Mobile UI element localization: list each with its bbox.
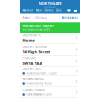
- staticText: Men: [36, 9, 42, 12]
- button[interactable]: Sale: [56, 9, 62, 12]
- staticText: Home: [22, 37, 34, 43]
- staticText: Women: [22, 9, 33, 12]
- staticText: Basket › Delivery: [22, 16, 46, 20]
- staticText: FREE NEXT-DAY DELIVERY: [22, 24, 54, 27]
- button[interactable]: POSTCODE: [20, 56, 80, 67]
- staticText: on orders over £40: [22, 28, 50, 31]
- staticText: Edit basket: [62, 16, 78, 20]
- button[interactable]: DELIVERY SLOT: [20, 67, 80, 76]
- staticText: POSTCODE: [22, 56, 35, 60]
- staticText: NORTHGATE: [38, 1, 61, 6]
- button[interactable]: Saved items: [67, 9, 71, 12]
- button[interactable]: Home: [44, 9, 53, 12]
- staticText: SW1A 1AA: [22, 60, 42, 66]
- button[interactable]: Basket: [73, 9, 78, 12]
- button[interactable]: Edit basket: [62, 16, 78, 20]
- button[interactable]: DELIVERING TO: [20, 33, 80, 43]
- staticText: DELIVERY ADDRESS: [22, 45, 46, 48]
- staticText: DELIVERY SLOT: [22, 67, 40, 71]
- staticText: name@example.com: [26, 93, 51, 96]
- staticText: CONTACT DETAILS: [22, 88, 44, 92]
- staticText: DELIVERING TO: [22, 33, 41, 37]
- staticText: Home: [44, 9, 53, 12]
- button[interactable]: Women: [22, 9, 33, 12]
- button[interactable]: PAYMENT METHOD: [20, 76, 80, 87]
- button[interactable]: DELIVERY ADDRESS: [20, 43, 80, 56]
- staticText: Visa ending 4242: [26, 82, 52, 85]
- button[interactable]: Men: [36, 9, 42, 12]
- staticText: Tomorrow 9am – 12pm: [26, 72, 56, 75]
- staticText: 14 High Street: [22, 49, 50, 54]
- staticText: Sale: [56, 9, 62, 12]
- staticText: department store: [44, 6, 56, 8]
- staticText: PAYMENT METHOD: [22, 77, 44, 81]
- button[interactable]: CONTACT DETAILS: [20, 87, 80, 98]
